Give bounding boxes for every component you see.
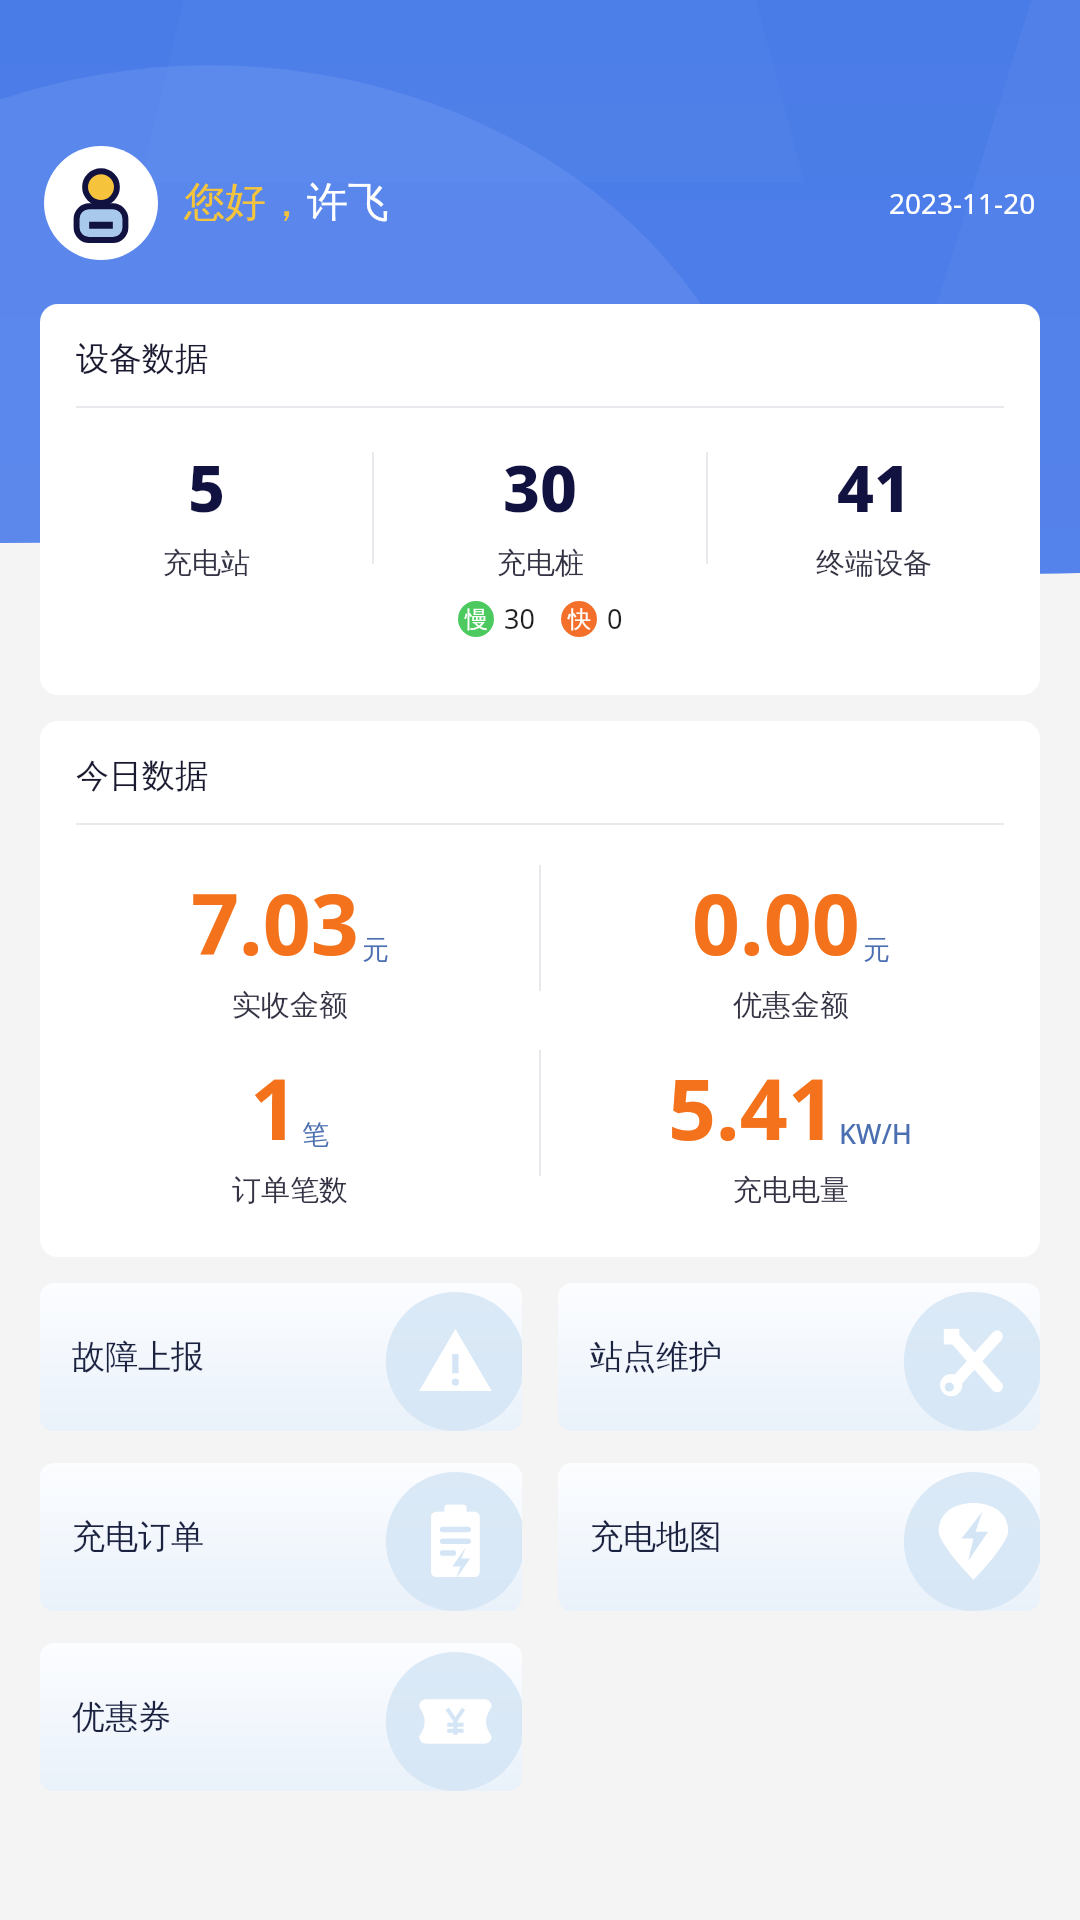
staticText: 充电站 <box>163 545 250 582</box>
staticText: 快 <box>568 605 591 634</box>
staticText: 实收金额 <box>232 987 348 1024</box>
staticText: 41 <box>837 444 911 531</box>
button[interactable]: 0.00 <box>541 865 1040 1024</box>
staticText: 7.03 <box>191 865 359 979</box>
button[interactable]: 1 <box>40 1050 539 1209</box>
staticText: 优惠金额 <box>733 987 849 1024</box>
staticText: 充电桩 <box>497 545 584 582</box>
staticText: 30 <box>504 600 535 637</box>
staticText: 许飞 <box>307 177 389 229</box>
staticText: 优惠券 <box>72 1696 171 1738</box>
staticText: 元 <box>863 933 890 967</box>
staticText: 30 <box>503 444 577 531</box>
staticText: 您好， <box>184 177 307 229</box>
button[interactable]: 41 <box>708 444 1040 582</box>
staticText: KW/H <box>839 1115 913 1152</box>
staticText: 5 <box>188 444 225 531</box>
staticText: 故障上报 <box>72 1336 204 1378</box>
staticText: 设备数据 <box>76 338 208 380</box>
staticText: 慢 <box>465 605 488 634</box>
staticText: 0 <box>607 600 623 637</box>
staticText: 元 <box>362 933 389 967</box>
button[interactable]: 7.03 <box>40 865 539 1024</box>
staticText: 订单笔数 <box>232 1172 348 1209</box>
button[interactable]: 5 <box>40 444 372 582</box>
staticText: 笔 <box>302 1118 329 1152</box>
staticText: 今日数据 <box>76 755 208 797</box>
button[interactable]: 5.41 <box>541 1050 1040 1209</box>
button[interactable]: 充电地图 <box>558 1463 1040 1611</box>
staticText: 2023-11-20 <box>889 184 1036 222</box>
staticText: 终端设备 <box>816 545 932 582</box>
staticText: 充电订单 <box>72 1516 204 1558</box>
staticText: 1 <box>250 1050 299 1164</box>
staticText: 充电地图 <box>590 1516 722 1558</box>
button[interactable]: Profile avatar <box>44 146 158 260</box>
staticText: 充电电量 <box>733 1172 849 1209</box>
button[interactable]: 充电订单 <box>40 1463 522 1611</box>
staticText: 5.41 <box>668 1050 836 1164</box>
staticText: 0.00 <box>692 865 860 979</box>
button[interactable]: 站点维护 <box>558 1283 1040 1431</box>
button[interactable]: 故障上报 <box>40 1283 522 1431</box>
button[interactable]: 30 <box>374 444 706 637</box>
button[interactable]: 优惠券 <box>40 1643 522 1791</box>
staticText: 站点维护 <box>590 1336 722 1378</box>
